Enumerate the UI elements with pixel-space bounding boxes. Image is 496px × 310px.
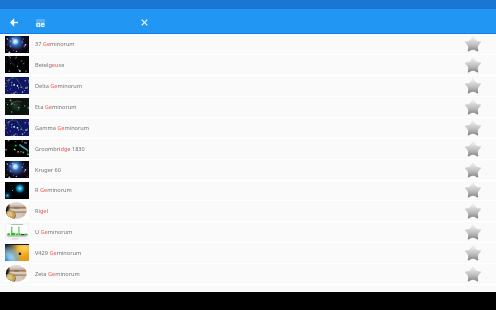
button[interactable]: Favourite [463,34,483,54]
button[interactable]: ge [36,19,45,27]
button[interactable]: V429 Geminorum [0,242,496,263]
button[interactable]: Eta Geminorum [0,96,496,117]
button[interactable]: Back [6,14,22,30]
staticText: Gamma Geminorum [35,124,90,132]
button[interactable]: Favourite [463,97,483,117]
button[interactable]: Favourite [463,160,483,180]
button[interactable]: Rigel [0,200,496,221]
staticText: Kruger 60 [35,166,61,174]
button[interactable]: Groombridge 1830 [0,138,496,159]
staticText: R Geminorum [35,186,72,194]
button[interactable]: Favourite [463,139,483,159]
button[interactable]: Betelgeuse [0,54,496,75]
button[interactable]: Delta Geminorum [0,75,496,96]
staticText: 37 Geminorum [35,40,75,48]
button[interactable]: Favourite [463,118,483,138]
button[interactable]: Favourite [463,243,483,263]
button[interactable]: U Geminorum [0,221,496,242]
button[interactable]: R Geminorum [0,180,496,200]
button[interactable]: Favourite [463,180,483,200]
button[interactable]: Favourite [463,55,483,75]
button[interactable]: Favourite [463,76,483,96]
button[interactable]: Favourite [463,222,483,242]
staticText: Delta Geminorum [35,82,83,90]
staticText: Eta Geminorum [35,103,77,111]
button[interactable]: Kruger 60 [0,159,496,180]
button[interactable]: Favourite [463,201,483,221]
staticText: ge [36,19,45,27]
button[interactable]: Zeta Geminorum [0,263,496,284]
button[interactable]: Gamma Geminorum [0,117,496,138]
button[interactable]: Favourite [463,264,483,284]
staticText: Groombridge 1830 [35,145,85,153]
button[interactable]: Clear search [136,14,152,30]
staticText: Rigel [35,207,48,215]
staticText: U Geminorum [35,228,73,236]
button[interactable]: 37 Geminorum [0,34,496,54]
staticText: Zeta Geminorum [35,270,80,278]
staticText: Betelgeuse [35,61,65,69]
staticText: V429 Geminorum [35,249,82,257]
